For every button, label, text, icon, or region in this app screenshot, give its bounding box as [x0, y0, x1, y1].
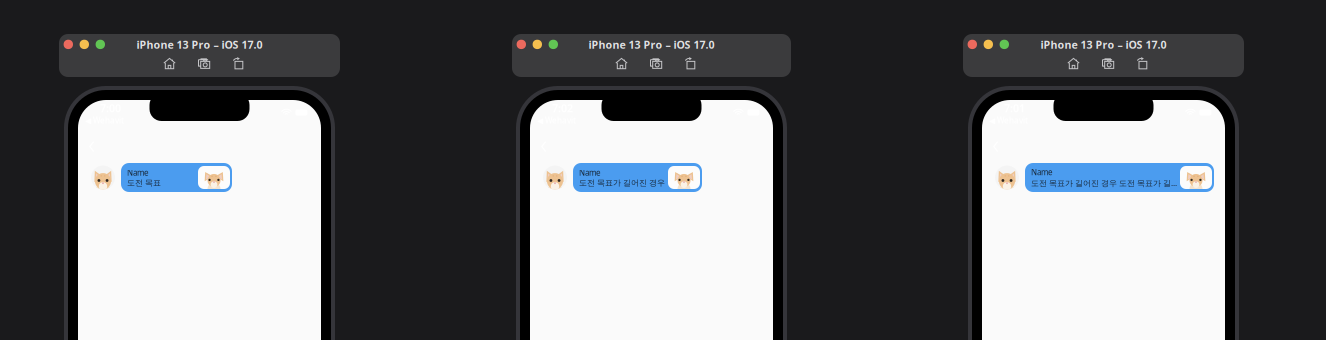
button[interactable]: Home [1067, 57, 1080, 69]
button[interactable]: Close [517, 40, 526, 49]
staticText: Name [127, 167, 149, 178]
staticText: Name [1031, 167, 1053, 177]
button[interactable]: Name [121, 163, 232, 192]
button[interactable]: Home [615, 57, 628, 69]
staticText: iPhone 13 Pro – iOS 17.0 [588, 38, 714, 52]
staticText: Name [579, 167, 601, 178]
button[interactable]: Home [163, 57, 176, 69]
staticText: iPhone 13 Pro – iOS 17.0 [1040, 38, 1166, 52]
button[interactable]: Minimise [984, 40, 993, 49]
button[interactable]: Screenshot [197, 57, 210, 69]
staticText: 도전 목표 [127, 178, 161, 188]
button[interactable]: Name [1025, 163, 1214, 192]
staticText: 도전 목표가 길어진 경우 [579, 178, 665, 188]
button[interactable]: Name [573, 163, 702, 192]
button[interactable]: Close [64, 40, 73, 49]
button[interactable]: Zoom [96, 40, 105, 49]
button[interactable]: Rotate [232, 57, 245, 69]
button[interactable]: Zoom [1000, 40, 1009, 49]
button[interactable]: Rotate [1136, 57, 1149, 69]
button[interactable]: Screenshot [649, 57, 662, 69]
button[interactable]: Rotate [684, 57, 697, 69]
button[interactable]: Zoom [549, 40, 558, 49]
button[interactable]: Minimise [533, 40, 542, 49]
button[interactable]: Screenshot [1101, 57, 1114, 69]
button[interactable]: Minimise [80, 40, 89, 49]
staticText: iPhone 13 Pro – iOS 17.0 [136, 38, 262, 52]
staticText: 도전 목표가 길어진 경우 도전 목표가 길어… [1031, 177, 1177, 188]
button[interactable]: Close [968, 40, 977, 49]
